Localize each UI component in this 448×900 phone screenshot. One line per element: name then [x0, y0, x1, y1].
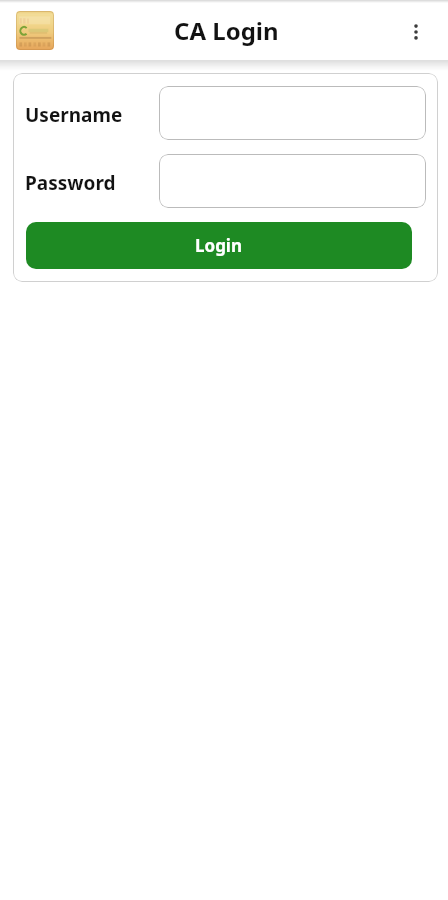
button[interactable]: More options [395, 11, 436, 52]
staticText: Login [195, 234, 243, 257]
button[interactable]: Login [26, 222, 412, 269]
button[interactable]: Username input field [159, 86, 426, 140]
staticText: CA Login [174, 14, 279, 47]
button[interactable]: App logo [16, 11, 54, 50]
staticText: Password [25, 170, 116, 196]
staticText: Username [25, 102, 123, 128]
button[interactable]: Password input field [159, 154, 426, 208]
